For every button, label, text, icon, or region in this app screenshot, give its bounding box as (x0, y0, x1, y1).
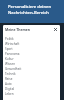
button[interactable]: Panorama (5, 51, 60, 56)
button[interactable]: Kultur (5, 56, 60, 61)
button[interactable]: Gesundheit (5, 66, 60, 71)
button[interactable]: Sport (5, 46, 60, 51)
staticText: Digital (5, 87, 15, 91)
staticText: Politik (5, 37, 14, 41)
staticText: Wirtschaft (5, 42, 20, 46)
staticText: Reise (5, 77, 13, 81)
staticText: Personalisiere deinen (8, 4, 52, 10)
button[interactable]: Auto (5, 81, 60, 86)
button[interactable]: Leben (5, 91, 60, 96)
button[interactable]: Reise (5, 76, 60, 81)
staticText: Auto (5, 82, 12, 86)
button[interactable]: Wirtschaft (5, 41, 60, 46)
staticText: Gesundheit (5, 67, 22, 71)
staticText: Kultur (5, 57, 14, 61)
button[interactable]: Politik (5, 36, 60, 41)
staticText: Wissen (5, 62, 15, 66)
staticText: Nachrichten-Bereich (8, 10, 49, 16)
button[interactable]: Technik (5, 71, 60, 76)
button[interactable]: Schließen (53, 27, 58, 32)
staticText: Panorama (5, 52, 20, 56)
staticText: Leben (5, 92, 14, 96)
staticText: Meine Themen (5, 27, 31, 32)
button[interactable]: Wissen (5, 61, 60, 66)
staticText: Technik (5, 72, 16, 76)
button[interactable]: Digital (5, 86, 60, 91)
staticText: Sport (5, 47, 13, 51)
